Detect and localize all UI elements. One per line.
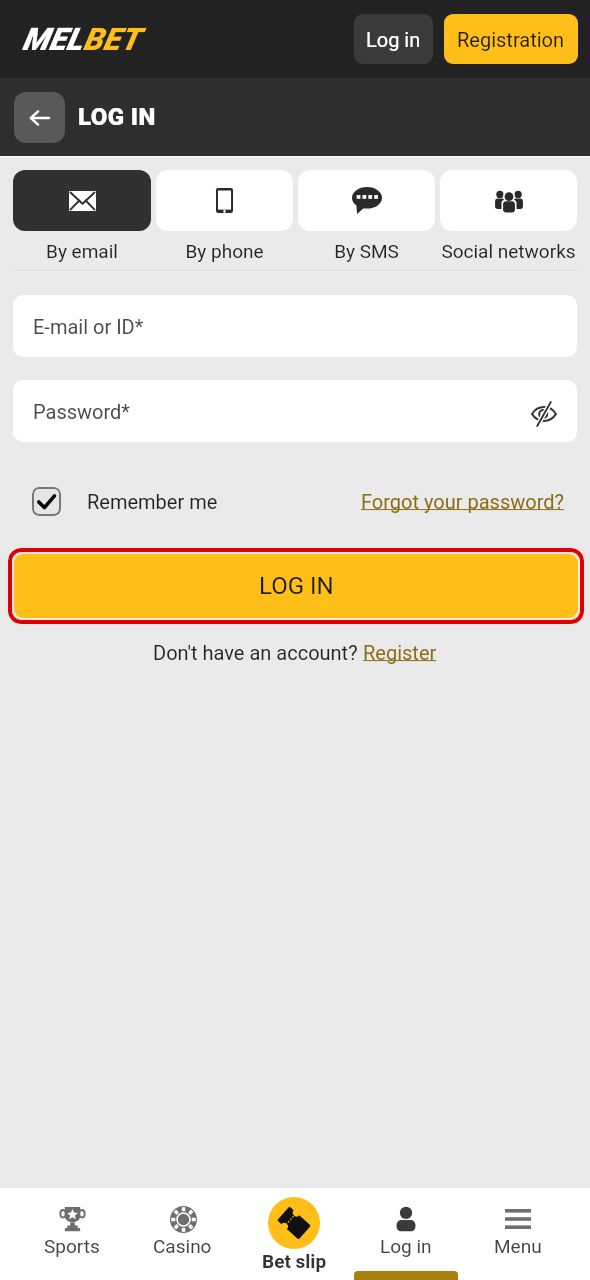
staticText: Casino [153, 1235, 212, 1257]
button[interactable]: Register [363, 641, 437, 664]
button[interactable]: Remember me [32, 487, 218, 516]
staticText: E-mail or ID* [33, 315, 144, 338]
staticText: Menu [494, 1235, 542, 1257]
staticText: MEL [22, 21, 83, 57]
button[interactable]: By email [13, 170, 151, 262]
button[interactable]: Forgot your password? [361, 490, 564, 513]
button[interactable]: Log in [350, 1188, 462, 1257]
staticText: By email [46, 240, 118, 262]
button[interactable]: E-mail or ID* [13, 295, 577, 357]
button[interactable]: Password* [13, 380, 577, 442]
button[interactable]: LOG IN [14, 554, 578, 618]
staticText: Log in [366, 28, 421, 51]
staticText: Sports [44, 1235, 100, 1257]
staticText: LOG IN [78, 103, 156, 131]
button[interactable]: Sports [16, 1188, 127, 1257]
button[interactable]: Registration [444, 14, 578, 64]
staticText: LOG IN [259, 572, 334, 600]
staticText: BET [83, 21, 140, 57]
button[interactable]: Log in [354, 14, 433, 64]
staticText: Remember me [87, 490, 218, 513]
button[interactable]: By phone [156, 170, 293, 262]
staticText: Bet slip [262, 1250, 327, 1272]
staticText: Log in [380, 1235, 432, 1257]
button[interactable]: Menu [462, 1188, 574, 1257]
button[interactable]: Back [14, 92, 65, 143]
staticText: Don't have an account? [153, 641, 363, 664]
button[interactable]: Social networks [440, 170, 577, 262]
staticText: Password* [33, 400, 130, 423]
staticText: Forgot your password? [361, 490, 564, 513]
button[interactable]: By SMS [298, 170, 435, 262]
staticText: By SMS [334, 240, 399, 262]
staticText: Registration [457, 28, 565, 51]
staticText: By phone [185, 240, 264, 262]
staticText: Register [363, 641, 437, 664]
button[interactable]: Bet slip [238, 1188, 350, 1272]
button[interactable]: Show password [524, 394, 564, 434]
staticText: Social networks [441, 240, 576, 262]
button[interactable]: Casino [127, 1188, 238, 1257]
